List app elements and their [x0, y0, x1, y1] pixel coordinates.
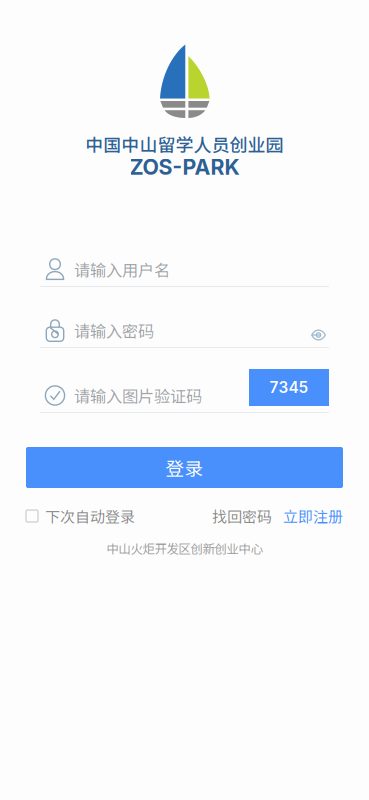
button[interactable]: Show password [300, 318, 336, 350]
staticText: 登录 [165, 454, 203, 481]
staticText: 找回密码 [212, 505, 272, 527]
button[interactable]: 立即注册 [272, 506, 343, 526]
staticText: ZOS-PARK [129, 154, 239, 180]
staticText: 中山火炬开发区创新创业中心 [106, 539, 262, 557]
button[interactable]: 找回密码 [212, 506, 272, 526]
staticText: 7345 [269, 378, 308, 397]
staticText: 请输入图片验证码 [74, 384, 202, 407]
button[interactable]: Refresh captcha image [249, 369, 329, 406]
staticText: 请输入密码 [74, 319, 154, 342]
staticText: 请输入用户名 [74, 258, 170, 281]
staticText: 中国中山留学人员创业园 [85, 131, 283, 157]
button[interactable]: 下次自动登录 [26, 506, 135, 526]
button[interactable]: 登录 [26, 447, 343, 488]
staticText: 立即注册 [283, 505, 343, 527]
staticText: 下次自动登录 [45, 505, 135, 527]
